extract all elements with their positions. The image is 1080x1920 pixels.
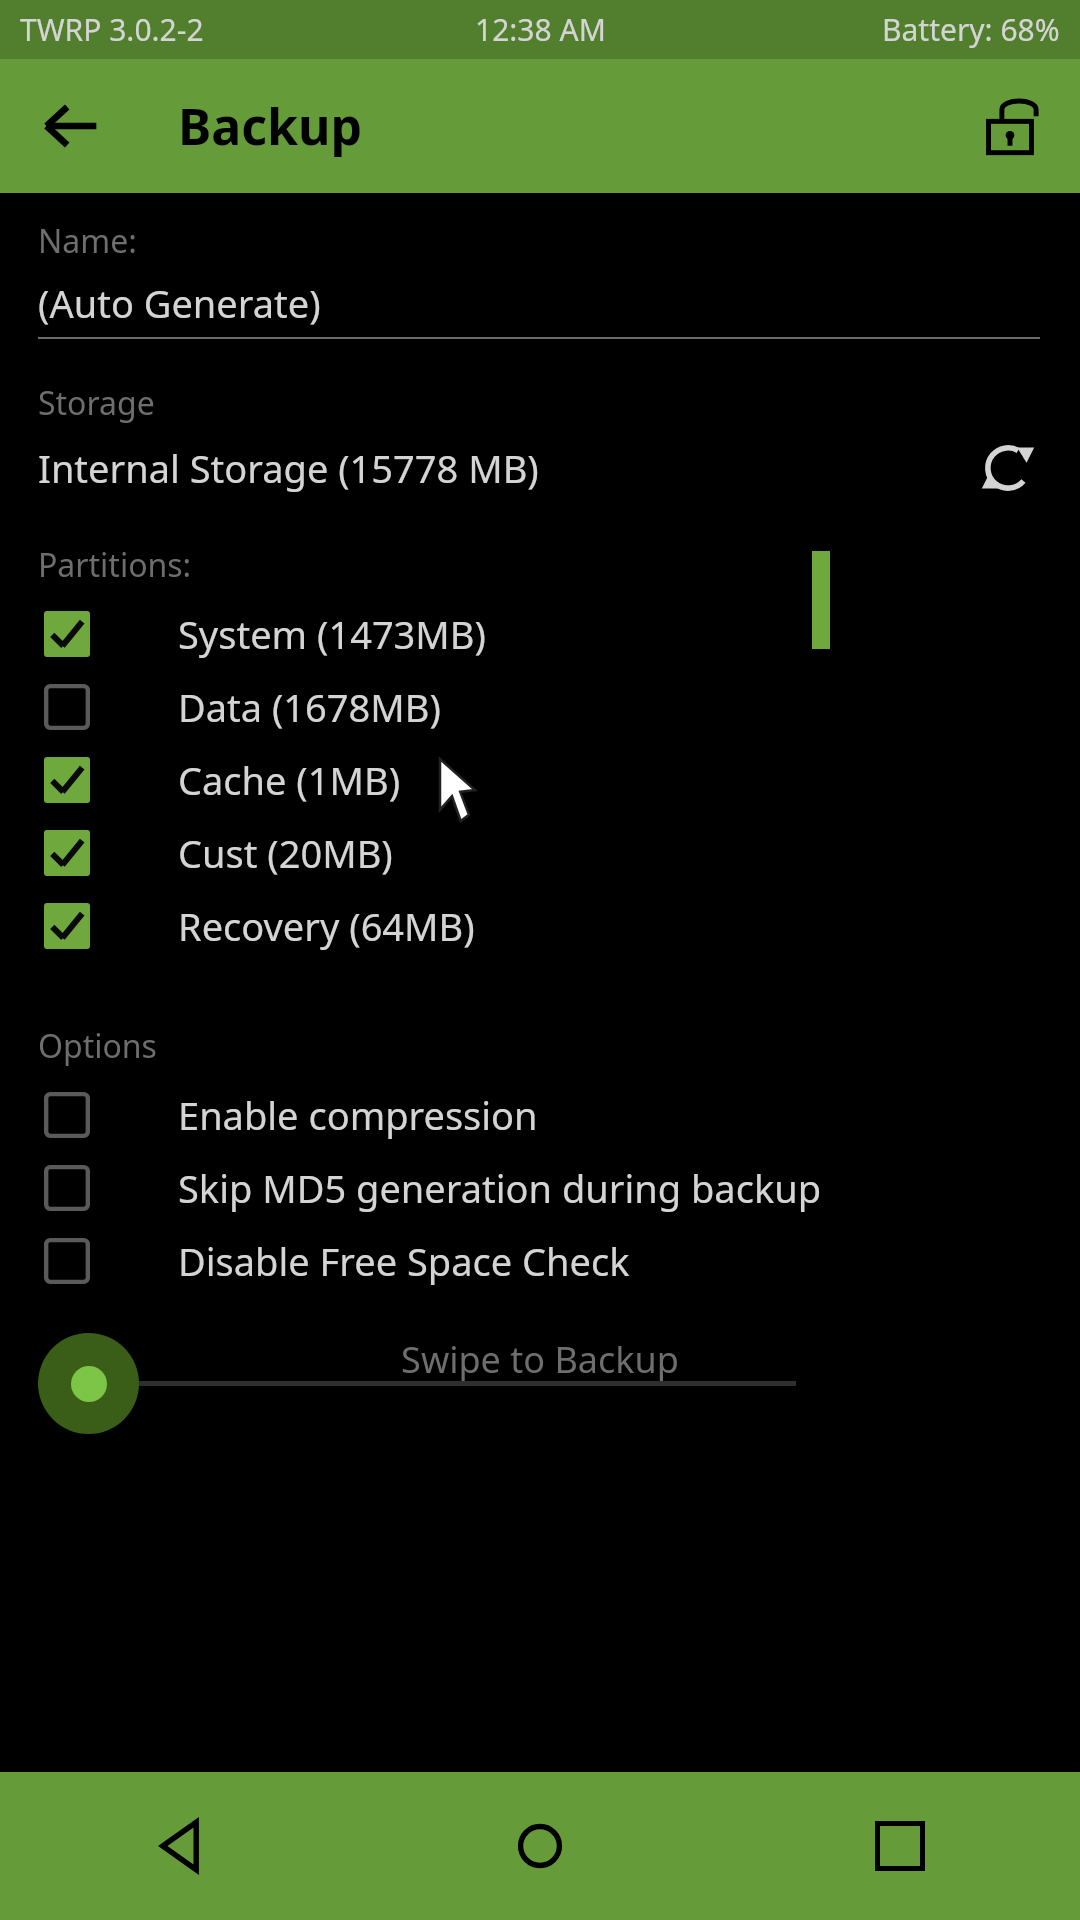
staticText: Enable compression <box>178 1089 538 1141</box>
staticText: Partitions: <box>38 543 192 587</box>
staticText: (Auto Generate) <box>38 277 321 329</box>
button[interactable]: Data (1678MB) <box>0 670 1080 743</box>
staticText: Battery: 68% <box>882 9 1060 50</box>
staticText: 12:38 AM <box>475 9 606 50</box>
staticText: Storage <box>38 381 155 425</box>
button[interactable]: Back <box>24 80 116 172</box>
button[interactable]: (Auto Generate) <box>38 277 1040 339</box>
button[interactable]: Back <box>0 1772 360 1920</box>
button[interactable]: Recent apps <box>720 1772 1080 1920</box>
button[interactable]: Cust (20MB) <box>0 816 1080 889</box>
button[interactable]: Internal Storage (15778 MB) <box>38 442 968 494</box>
button[interactable]: Swipe to Backup <box>38 1333 139 1434</box>
button[interactable]: Enable compression <box>0 1078 1080 1151</box>
button[interactable]: Refresh <box>968 437 1048 499</box>
button[interactable]: Unlock <box>964 80 1056 172</box>
button[interactable]: Disable Free Space Check <box>0 1224 1080 1297</box>
staticText: Backup <box>178 92 363 160</box>
staticText: Cache (1MB) <box>178 754 401 806</box>
staticText: TWRP 3.0.2-2 <box>20 9 204 50</box>
button[interactable]: Cache (1MB) <box>0 743 1080 816</box>
button[interactable]: Skip MD5 generation during backup <box>0 1151 1080 1224</box>
staticText: Recovery (64MB) <box>178 900 475 952</box>
button[interactable]: Home <box>360 1772 720 1920</box>
staticText: Disable Free Space Check <box>178 1235 630 1287</box>
button[interactable]: Recovery (64MB) <box>0 889 1080 962</box>
staticText: Cust (20MB) <box>178 827 393 879</box>
staticText: Name: <box>38 219 137 263</box>
staticText: Internal Storage (15778 MB) <box>38 442 539 494</box>
button[interactable]: System (1473MB) <box>0 597 1080 670</box>
staticText: Data (1678MB) <box>178 681 441 733</box>
staticText: System (1473MB) <box>178 608 486 660</box>
staticText: Swipe to Backup <box>401 1335 679 1384</box>
staticText: Options <box>38 1024 157 1068</box>
staticText: Skip MD5 generation during backup <box>178 1162 822 1214</box>
